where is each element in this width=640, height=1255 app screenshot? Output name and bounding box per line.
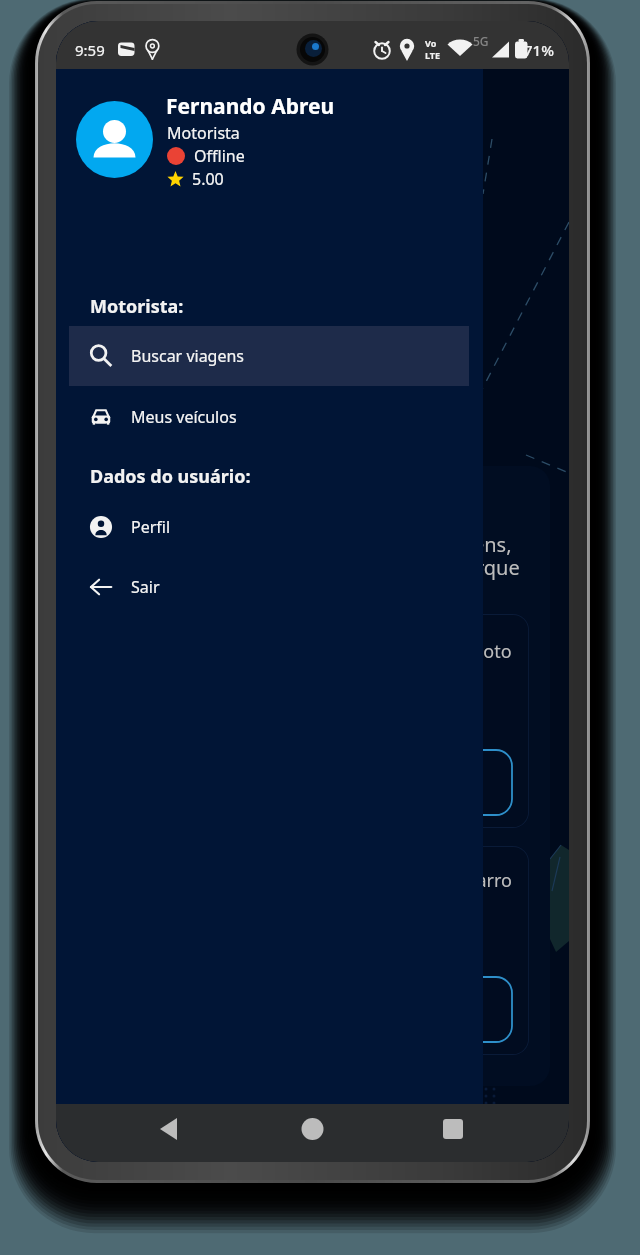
staticText: Buscar viagens <box>131 345 245 367</box>
staticText: 5.00 <box>192 168 224 190</box>
staticText: Encontre viagens, aceite e embarque <box>345 531 520 581</box>
staticText: Vo <box>425 37 437 49</box>
staticText: Fernando Abreu <box>166 92 335 121</box>
staticText: Carro <box>465 868 512 893</box>
staticText: Motorista: <box>90 294 184 319</box>
button[interactable]: Perfil <box>69 497 469 557</box>
staticText: 71% <box>524 40 554 60</box>
button[interactable]: Moto <box>90 614 529 828</box>
staticText: Moto <box>467 639 512 664</box>
staticText: 9:59 <box>75 40 105 60</box>
button[interactable]: Meus veículos <box>69 387 469 447</box>
button[interactable]: Buscar viagens <box>69 326 469 386</box>
staticText: Meus veículos <box>131 406 237 428</box>
staticText: Sair <box>131 576 160 598</box>
button[interactable]: Sair <box>69 557 469 617</box>
staticText: Offline <box>194 145 245 167</box>
staticText: 5G <box>473 33 489 49</box>
staticText: Perfil <box>131 516 171 538</box>
staticText: LTE <box>425 49 441 61</box>
staticText: Dados do usuário: <box>90 464 251 489</box>
button[interactable]: Carro <box>90 846 529 1055</box>
staticText: Motorista <box>167 122 240 144</box>
